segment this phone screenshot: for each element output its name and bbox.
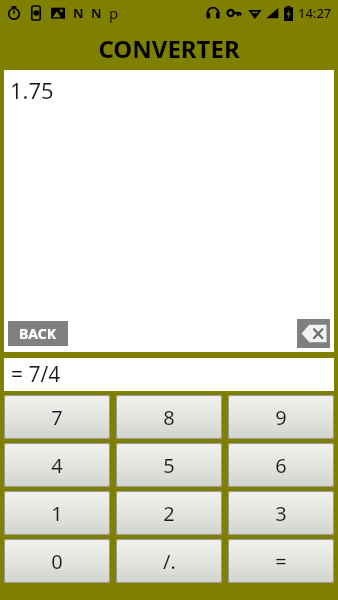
staticText: 2: [163, 500, 175, 527]
staticText: 6: [275, 452, 287, 479]
staticText: p: [109, 3, 119, 23]
staticText: 4: [51, 452, 63, 479]
staticText: 8: [163, 404, 175, 431]
staticText: 3: [275, 500, 287, 527]
staticText: N: [73, 4, 84, 22]
button[interactable]: 3: [228, 491, 334, 535]
staticText: /.: [163, 548, 176, 575]
staticText: 14:27: [298, 4, 332, 22]
button[interactable]: 9: [228, 395, 334, 439]
button[interactable]: 0: [4, 539, 110, 583]
button[interactable]: 2: [116, 491, 222, 535]
staticText: = 7/4: [11, 360, 61, 389]
staticText: =: [275, 548, 287, 575]
staticText: 9: [275, 404, 287, 431]
button[interactable]: /.: [116, 539, 222, 583]
button[interactable]: 6: [228, 443, 334, 487]
staticText: 1.75: [10, 75, 54, 105]
staticText: N: [91, 4, 102, 22]
staticText: 5: [163, 452, 175, 479]
button[interactable]: BACK: [8, 321, 68, 346]
staticText: 7: [51, 404, 63, 431]
button[interactable]: Backspace: [297, 319, 330, 348]
staticText: CONVERTER: [98, 32, 240, 65]
button[interactable]: 5: [116, 443, 222, 487]
staticText: 0: [51, 548, 63, 575]
button[interactable]: 7: [4, 395, 110, 439]
button[interactable]: 1: [4, 491, 110, 535]
staticText: BACK: [19, 324, 57, 343]
button[interactable]: =: [228, 539, 334, 583]
button[interactable]: 8: [116, 395, 222, 439]
staticText: 1: [51, 500, 63, 527]
button[interactable]: 4: [4, 443, 110, 487]
